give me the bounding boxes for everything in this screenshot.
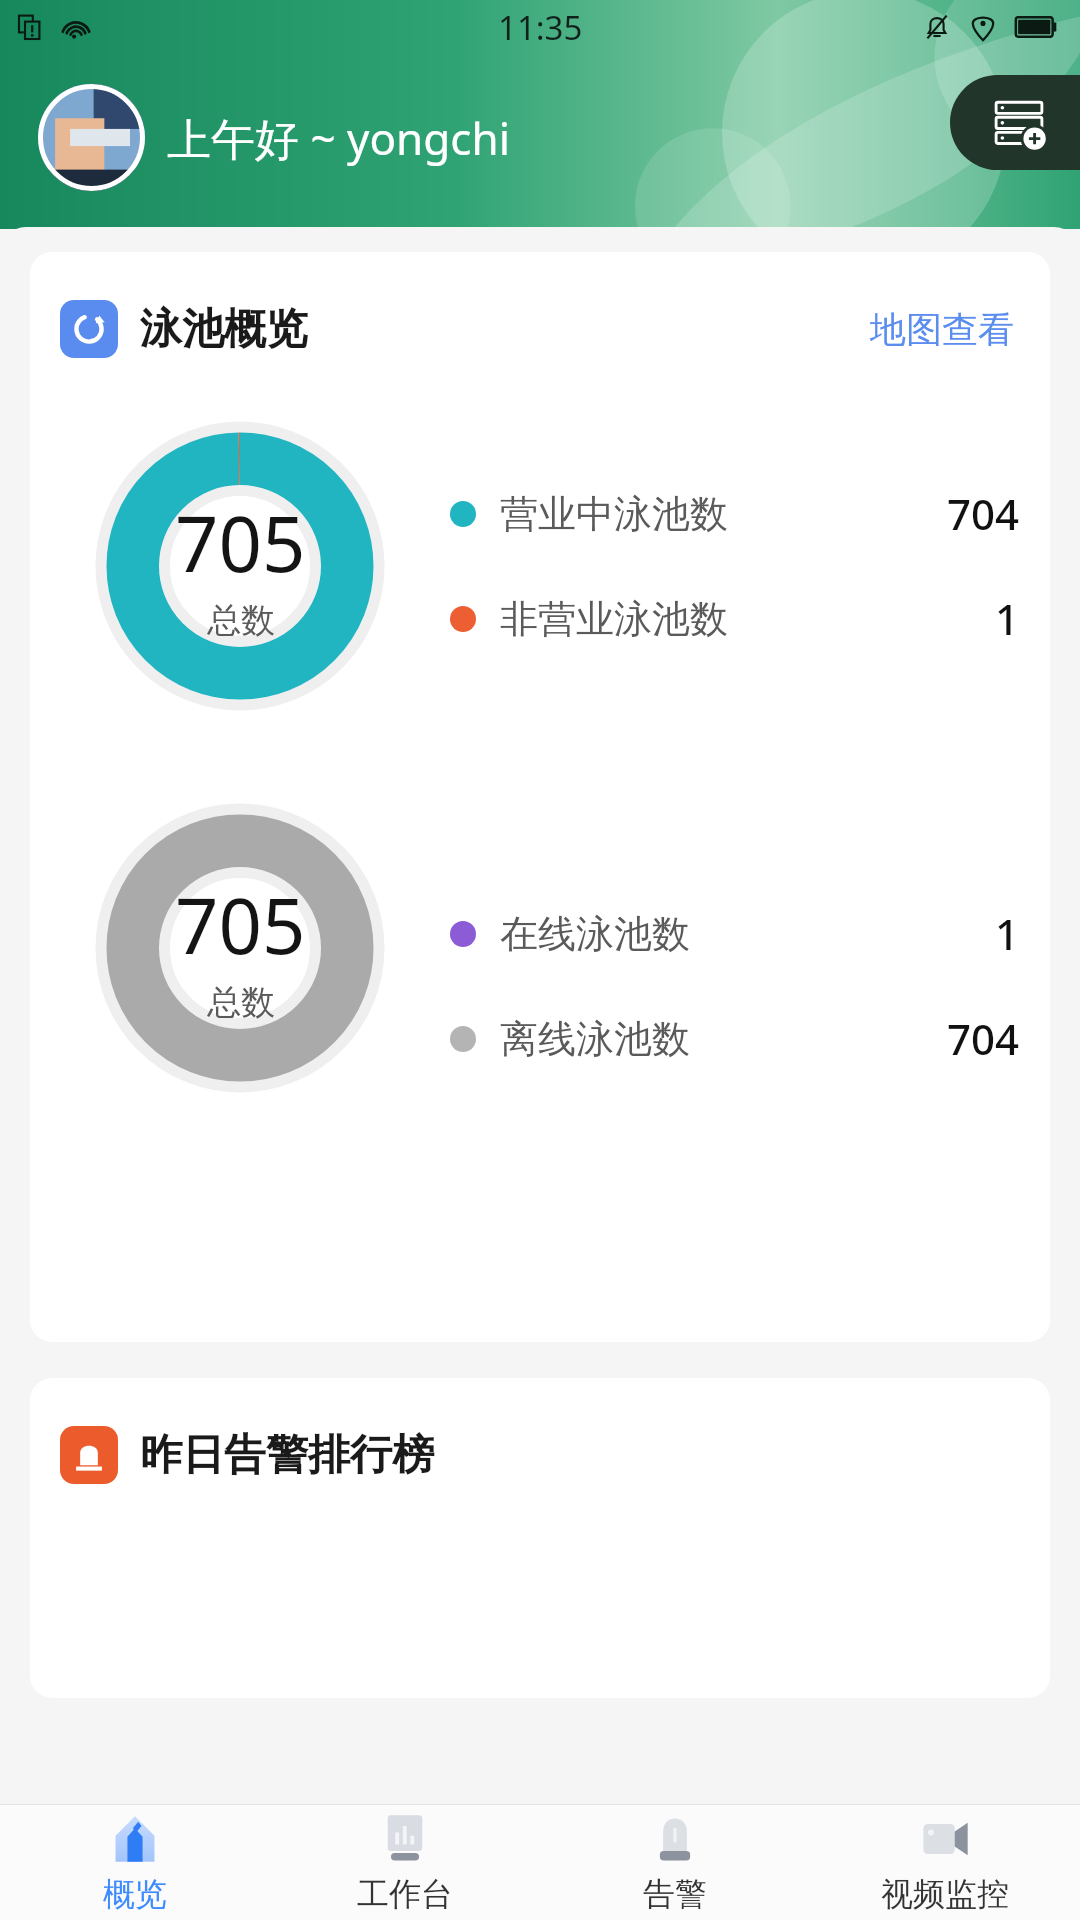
button[interactable]: 工作台 [270,1805,540,1920]
staticText: 上午好 ~ yongchi [167,108,511,168]
staticText: 非营业泳池数 [500,595,728,643]
staticText: 705 [175,873,306,977]
staticText: 在线泳池数 [500,910,690,958]
staticText: 11:35 [498,5,583,50]
staticText: 概览 [103,1874,167,1914]
button[interactable]: Profile avatar [38,84,145,191]
staticText: 704 [947,1010,1020,1067]
staticText: 705 [175,491,306,595]
staticText: 704 [947,485,1020,542]
button[interactable]: 概览 [0,1805,270,1920]
staticText: 地图查看 [870,307,1014,352]
button[interactable]: 视频监控 [810,1805,1080,1920]
staticText: 1 [995,905,1020,962]
staticText: 视频监控 [881,1874,1009,1914]
button[interactable]: 地图查看 [864,301,1020,358]
staticText: 总数 [207,599,275,642]
staticText: 1 [995,590,1020,647]
staticText: 昨日告警排行榜 [140,1429,434,1482]
staticText: 营业中泳池数 [500,490,728,538]
staticText: 工作台 [357,1874,453,1914]
staticText: 总数 [207,981,275,1024]
button[interactable]: 告警 [540,1805,810,1920]
staticText: 告警 [643,1874,707,1914]
staticText: 离线泳池数 [500,1015,690,1063]
button[interactable]: Add device [950,75,1080,170]
staticText: 泳池概览 [140,303,308,356]
